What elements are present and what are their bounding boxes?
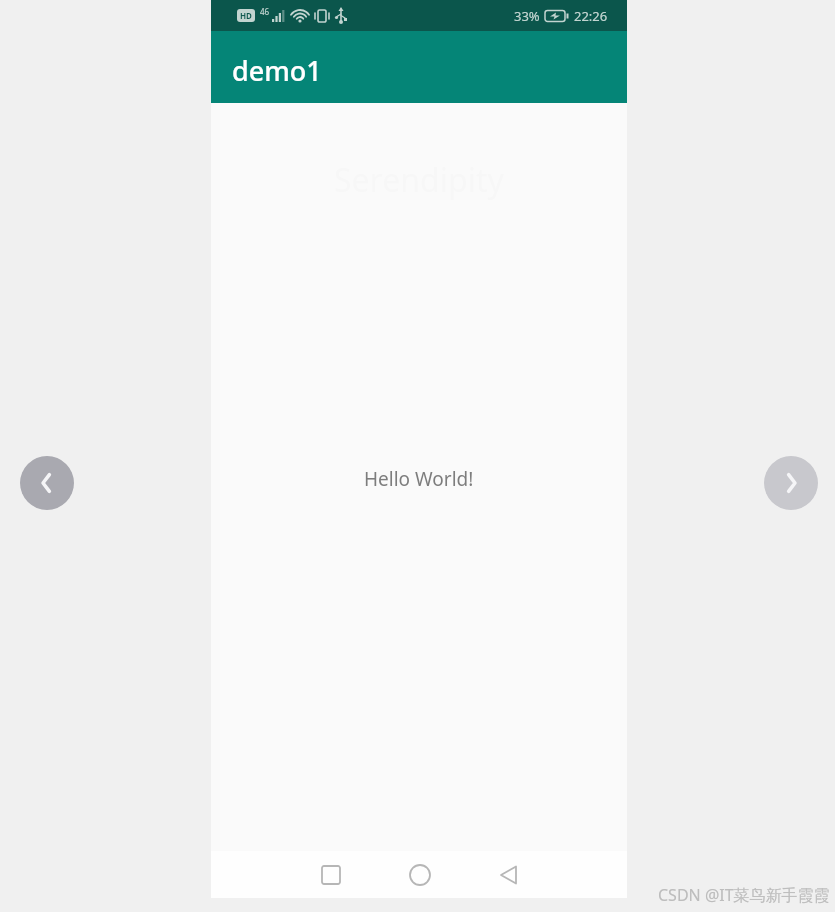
staticText: HD bbox=[240, 10, 252, 21]
staticText: demo1 bbox=[232, 52, 322, 89]
button[interactable] bbox=[20, 456, 74, 510]
button[interactable] bbox=[307, 851, 354, 898]
staticText: 22:26 bbox=[574, 7, 608, 25]
button[interactable] bbox=[396, 851, 443, 898]
staticText: Hello World! bbox=[364, 466, 474, 492]
button[interactable] bbox=[764, 456, 818, 510]
button[interactable] bbox=[485, 851, 532, 898]
staticText: 46 bbox=[260, 6, 270, 17]
staticText: CSDN @IT菜鸟新手霞霞 bbox=[658, 884, 830, 906]
staticText: 33% bbox=[514, 7, 540, 25]
